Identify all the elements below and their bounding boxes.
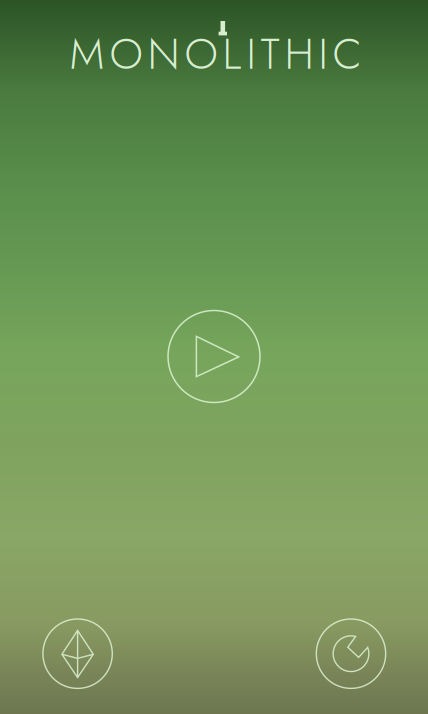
button[interactable]: Progress [0,0,428,714]
button[interactable]: Play [0,0,428,714]
staticText: MONOLITHIC [69,23,361,85]
button[interactable]: Collection [0,0,428,714]
